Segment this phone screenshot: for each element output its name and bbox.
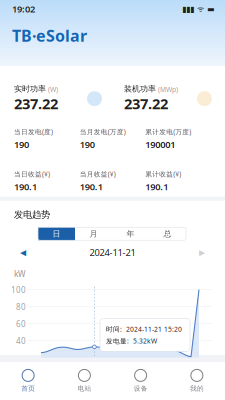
staticText: (W) (48, 85, 58, 94)
staticText: ▶ (199, 248, 205, 257)
staticText: 190001 (145, 138, 175, 151)
staticText: 实时功率 (14, 84, 46, 94)
staticText: 当日发电(度) (14, 127, 53, 136)
staticText: TB·eSolar (12, 25, 87, 46)
staticText: (MWp) (158, 85, 178, 94)
staticText: 当月收益(¥) (80, 170, 116, 178)
staticText: 40 (16, 336, 26, 346)
staticText: 首页 (21, 384, 35, 393)
button[interactable]: Previous day (10, 246, 36, 258)
staticText: 237.22 (14, 94, 58, 113)
button[interactable]: 年 (112, 227, 149, 240)
staticText: 190.1 (14, 180, 37, 193)
button[interactable]: 日 (38, 227, 75, 240)
staticText: ▮▮▮ ᯤ ▬ (182, 4, 215, 14)
staticText: 100 (11, 285, 26, 295)
staticText: 237.22 (124, 94, 168, 113)
staticText: 年 (126, 229, 134, 239)
staticText: 装机功率 (124, 84, 156, 94)
staticText: 累计收益(¥) (145, 170, 181, 178)
staticText: 总 (163, 229, 171, 239)
staticText: 60 (16, 319, 26, 329)
staticText: 时间: 2024-11-21 15:20 (106, 325, 182, 334)
staticText: ◀ (20, 248, 26, 257)
button[interactable]: 设备 (112, 362, 169, 400)
button[interactable]: Next day (189, 246, 215, 258)
button[interactable]: 我的 (169, 362, 225, 400)
staticText: 当月发电(万度) (80, 127, 126, 136)
staticText: 日 (52, 229, 60, 239)
staticText: 设备 (134, 384, 148, 393)
staticText: 发电趋势 (14, 209, 50, 220)
staticText: 累计发电(万度) (145, 127, 191, 136)
staticText: 月 (89, 229, 97, 239)
button[interactable]: 首页 (0, 362, 56, 400)
staticText: kW (14, 269, 26, 279)
staticText: 190 (80, 138, 95, 151)
staticText: 2024-11-21 (89, 246, 135, 259)
staticText: 80 (16, 302, 26, 312)
staticText: 190.1 (80, 180, 103, 193)
staticText: 当日收益(¥) (14, 170, 50, 178)
button[interactable]: 总 (149, 227, 186, 240)
staticText: 我的 (190, 384, 204, 393)
staticText: 发电量: 5.32kW (106, 336, 157, 345)
staticText: 19:02 (12, 3, 35, 15)
button[interactable]: 月 (75, 227, 112, 240)
staticText: 190.1 (145, 180, 168, 193)
button[interactable]: 电站 (56, 362, 112, 400)
staticText: 190 (14, 138, 29, 151)
staticText: 电站 (77, 384, 91, 393)
